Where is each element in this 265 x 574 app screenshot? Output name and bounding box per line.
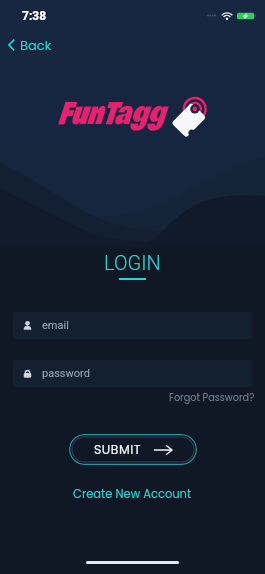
button[interactable]: password [13,360,252,387]
staticText: LOGIN [104,251,161,274]
button[interactable]: SUBMIT [69,434,197,465]
staticText: SUBMIT [94,441,142,458]
button[interactable]: Back [4,31,56,59]
staticText: Back [20,36,52,54]
staticText: password [42,367,90,380]
button[interactable]: email [13,312,252,339]
staticText: email [42,319,69,332]
button[interactable]: Create New Account [70,483,195,505]
staticText: FunTagg [57,91,164,138]
staticText: 7:38 [22,9,47,23]
button[interactable]: Forgot Password? [166,388,258,408]
